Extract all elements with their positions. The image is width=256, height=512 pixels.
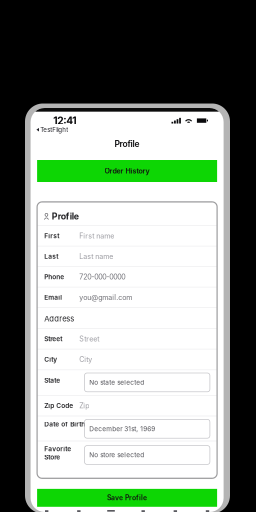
staticText: Last <box>44 252 58 260</box>
staticText: 720-000-0000 <box>79 273 125 281</box>
staticText: Zip <box>79 401 89 410</box>
staticText: Profile <box>115 139 140 149</box>
staticText: Favorite <box>44 445 71 453</box>
button[interactable]: Order History <box>37 160 217 182</box>
staticText: you@gmail.com <box>79 293 132 302</box>
staticText: No store selected <box>89 451 144 459</box>
staticText: No state selected <box>89 378 144 386</box>
button[interactable]: Save Profile <box>37 489 217 507</box>
staticText: 12:41 <box>53 115 76 127</box>
staticText: TestFlight <box>40 126 68 133</box>
staticText: December 31st, 1969 <box>89 425 155 433</box>
staticText: Street <box>79 335 99 343</box>
staticText: Order History <box>105 167 150 175</box>
staticText: Store <box>44 453 60 461</box>
staticText: Address <box>44 314 74 323</box>
staticText: First name <box>79 232 114 240</box>
staticText: Zip Code <box>44 402 73 410</box>
staticText: First <box>44 232 59 240</box>
staticText: City <box>44 355 57 363</box>
staticText: City <box>79 355 92 364</box>
staticText: Phone <box>44 273 64 281</box>
staticText: Save Profile <box>107 494 147 502</box>
staticText: Profile <box>52 211 79 221</box>
staticText: Last name <box>79 252 113 261</box>
staticText: Street <box>44 335 62 343</box>
staticText: Date of Birth <box>44 420 85 428</box>
staticText: State <box>44 376 60 384</box>
staticText: Email <box>44 293 62 301</box>
